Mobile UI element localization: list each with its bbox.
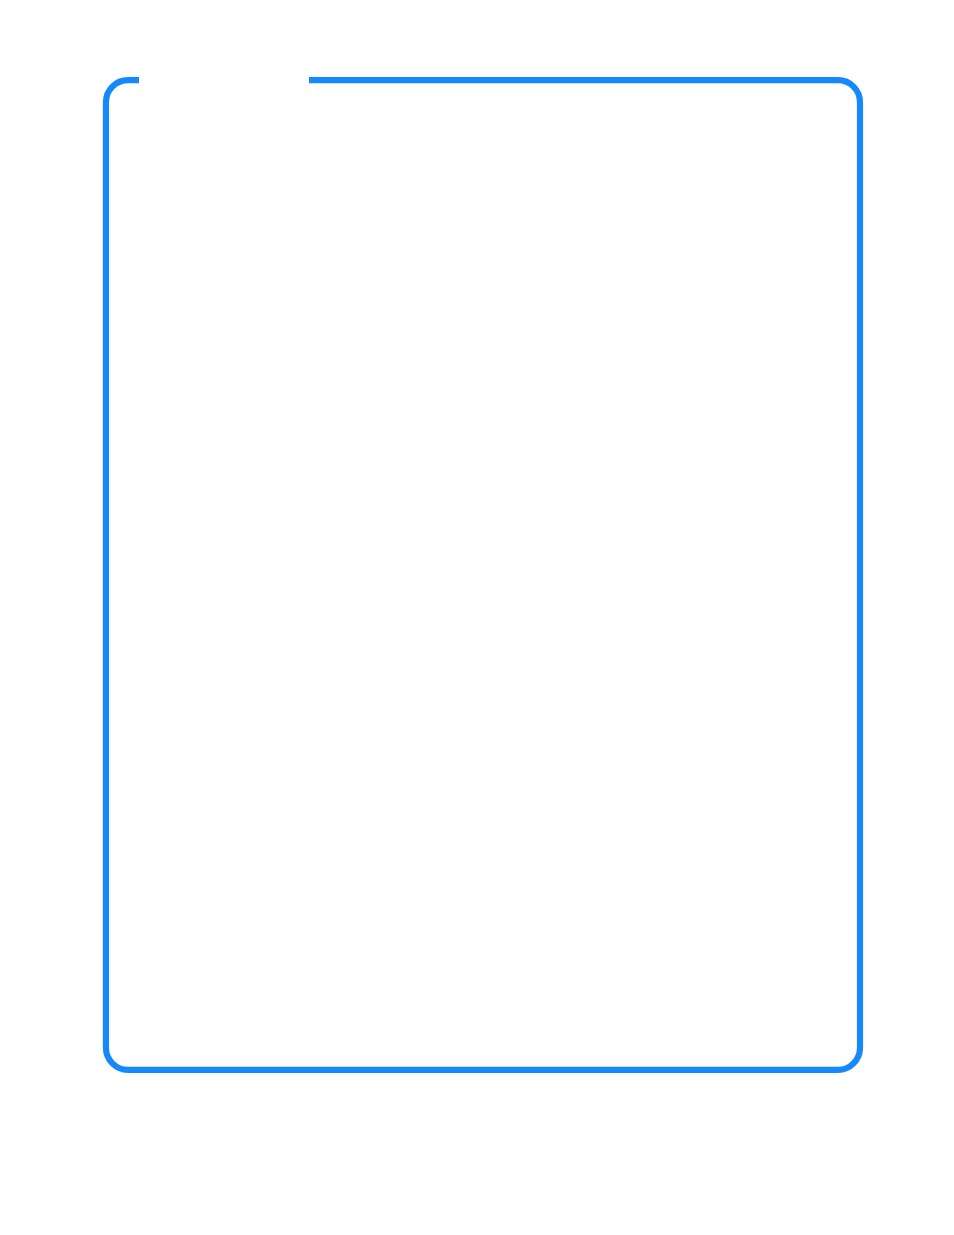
button[interactable]: Text input field bbox=[103, 77, 863, 1073]
